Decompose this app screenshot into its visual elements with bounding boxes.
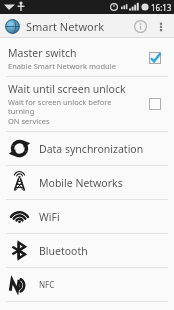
staticText: Wait until screen unlock	[8, 82, 126, 96]
staticText: Smart Network	[26, 19, 105, 34]
button[interactable]: Checked	[142, 45, 168, 71]
button[interactable]: Data synchronization	[0, 132, 174, 165]
staticText: WiFi	[39, 210, 60, 224]
button[interactable]: Bluetooth	[0, 234, 174, 267]
button[interactable]: More options	[151, 16, 171, 36]
staticText: Enable Smart Network module	[8, 61, 116, 71]
staticText: Master switch	[8, 46, 77, 60]
button[interactable]: Master switch	[0, 40, 174, 76]
button[interactable]: WiFi	[0, 200, 174, 233]
button[interactable]: Info	[129, 15, 151, 37]
button[interactable]: Mobile Networks	[0, 166, 174, 199]
button[interactable]: NFC	[0, 268, 174, 301]
staticText: ON services	[8, 116, 50, 126]
button[interactable]: Wait until screen unlock	[0, 77, 174, 131]
staticText: 16:13	[151, 2, 172, 13]
staticText: Data synchronization	[39, 142, 144, 156]
staticText: Bluetooth	[39, 244, 88, 258]
button[interactable]: Unchecked	[142, 91, 168, 117]
staticText: Wait for screen unlock before turning	[8, 97, 138, 116]
staticText: NFC	[39, 279, 55, 290]
staticText: Mobile Networks	[39, 176, 123, 190]
